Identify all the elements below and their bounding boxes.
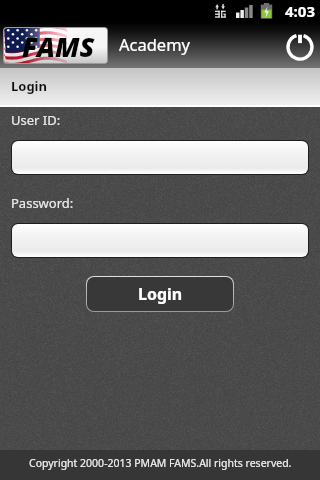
button[interactable]: Power / Logout [284,29,316,61]
staticText: 4:03 [285,1,315,21]
button[interactable]: Login [87,277,233,311]
staticText: Password: [11,194,74,212]
staticText: Academy [119,33,191,55]
button[interactable] [12,141,308,174]
button[interactable] [12,224,308,257]
staticText: Login [138,283,183,305]
staticText: User ID: [11,111,61,129]
staticText: Login [11,77,47,95]
staticText: FAMS [22,28,95,63]
staticText: Copyright 2000-2013 PMAM FAMS.All rights… [29,456,292,470]
